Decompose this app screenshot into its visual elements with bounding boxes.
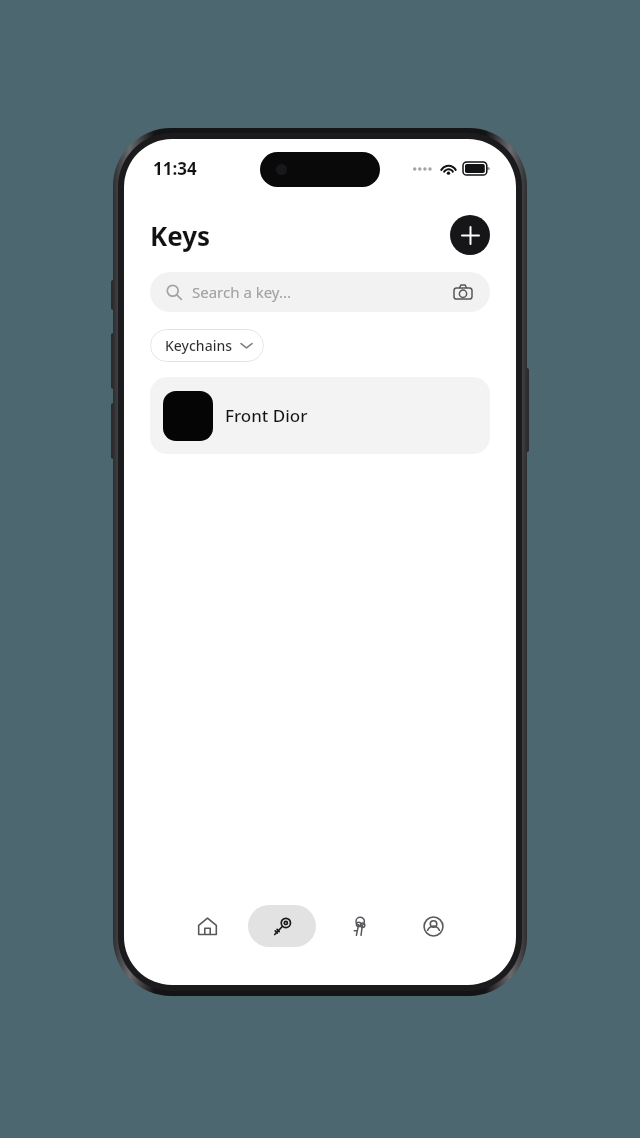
- button[interactable]: Keychains: [324, 905, 392, 947]
- button[interactable]: Home: [173, 905, 241, 947]
- button[interactable]: Profile: [399, 905, 467, 947]
- staticText: Search a key...: [192, 282, 291, 302]
- staticText: Front Dior: [225, 404, 308, 427]
- button[interactable]: Scan with camera: [452, 281, 474, 303]
- button[interactable]: Keychains: [150, 329, 264, 362]
- button[interactable]: Keys: [248, 905, 316, 947]
- button[interactable]: Front Dior: [150, 377, 490, 454]
- button[interactable]: Search a key...: [150, 272, 490, 312]
- staticText: Keychains: [165, 336, 233, 355]
- staticText: Keys: [150, 218, 211, 253]
- staticText: 11:34: [153, 157, 197, 180]
- button[interactable]: Add key: [450, 215, 490, 255]
